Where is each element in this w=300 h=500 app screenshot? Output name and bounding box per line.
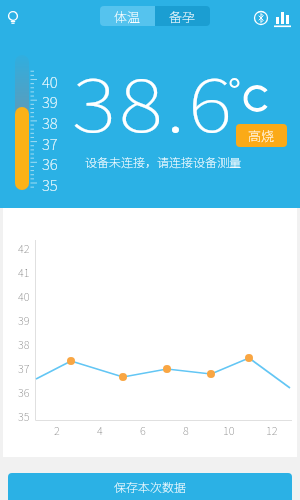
button[interactable]: 保存本次数据 xyxy=(8,473,292,500)
button[interactable] xyxy=(251,8,271,28)
button[interactable]: 高烧 xyxy=(236,124,287,147)
staticText: 35 xyxy=(18,408,30,424)
staticText: 38 xyxy=(18,336,30,352)
staticText: 40 xyxy=(42,71,58,89)
staticText: 保存本次数据 xyxy=(114,478,187,495)
staticText: 12 xyxy=(266,422,278,438)
staticText: 备孕 xyxy=(169,7,196,26)
staticText: 38 xyxy=(42,112,58,130)
staticText: 37 xyxy=(18,360,30,376)
staticText: 设备未连接，请连接设备测量 xyxy=(85,153,242,169)
staticText: 36 xyxy=(42,153,58,171)
staticText: 38.6 xyxy=(72,48,236,152)
button[interactable]: 体温 xyxy=(100,6,155,26)
staticText: 39 xyxy=(18,312,30,328)
button[interactable] xyxy=(3,6,24,27)
staticText: 体温 xyxy=(114,7,141,26)
button[interactable]: 备孕 xyxy=(155,6,210,26)
staticText: 41 xyxy=(18,264,30,280)
staticText: 2 xyxy=(54,422,60,438)
staticText: 4 xyxy=(97,422,103,438)
staticText: 10 xyxy=(223,422,235,438)
staticText: 39 xyxy=(42,91,58,109)
button[interactable] xyxy=(272,8,293,28)
staticText: 42 xyxy=(18,240,30,256)
staticText: 6 xyxy=(140,422,146,438)
staticText: 8 xyxy=(183,422,189,438)
staticText: 36 xyxy=(18,384,30,400)
staticText: 高烧 xyxy=(248,126,275,145)
staticText: 35 xyxy=(42,174,58,192)
staticText: 37 xyxy=(42,133,58,151)
staticText: 40 xyxy=(18,288,30,304)
